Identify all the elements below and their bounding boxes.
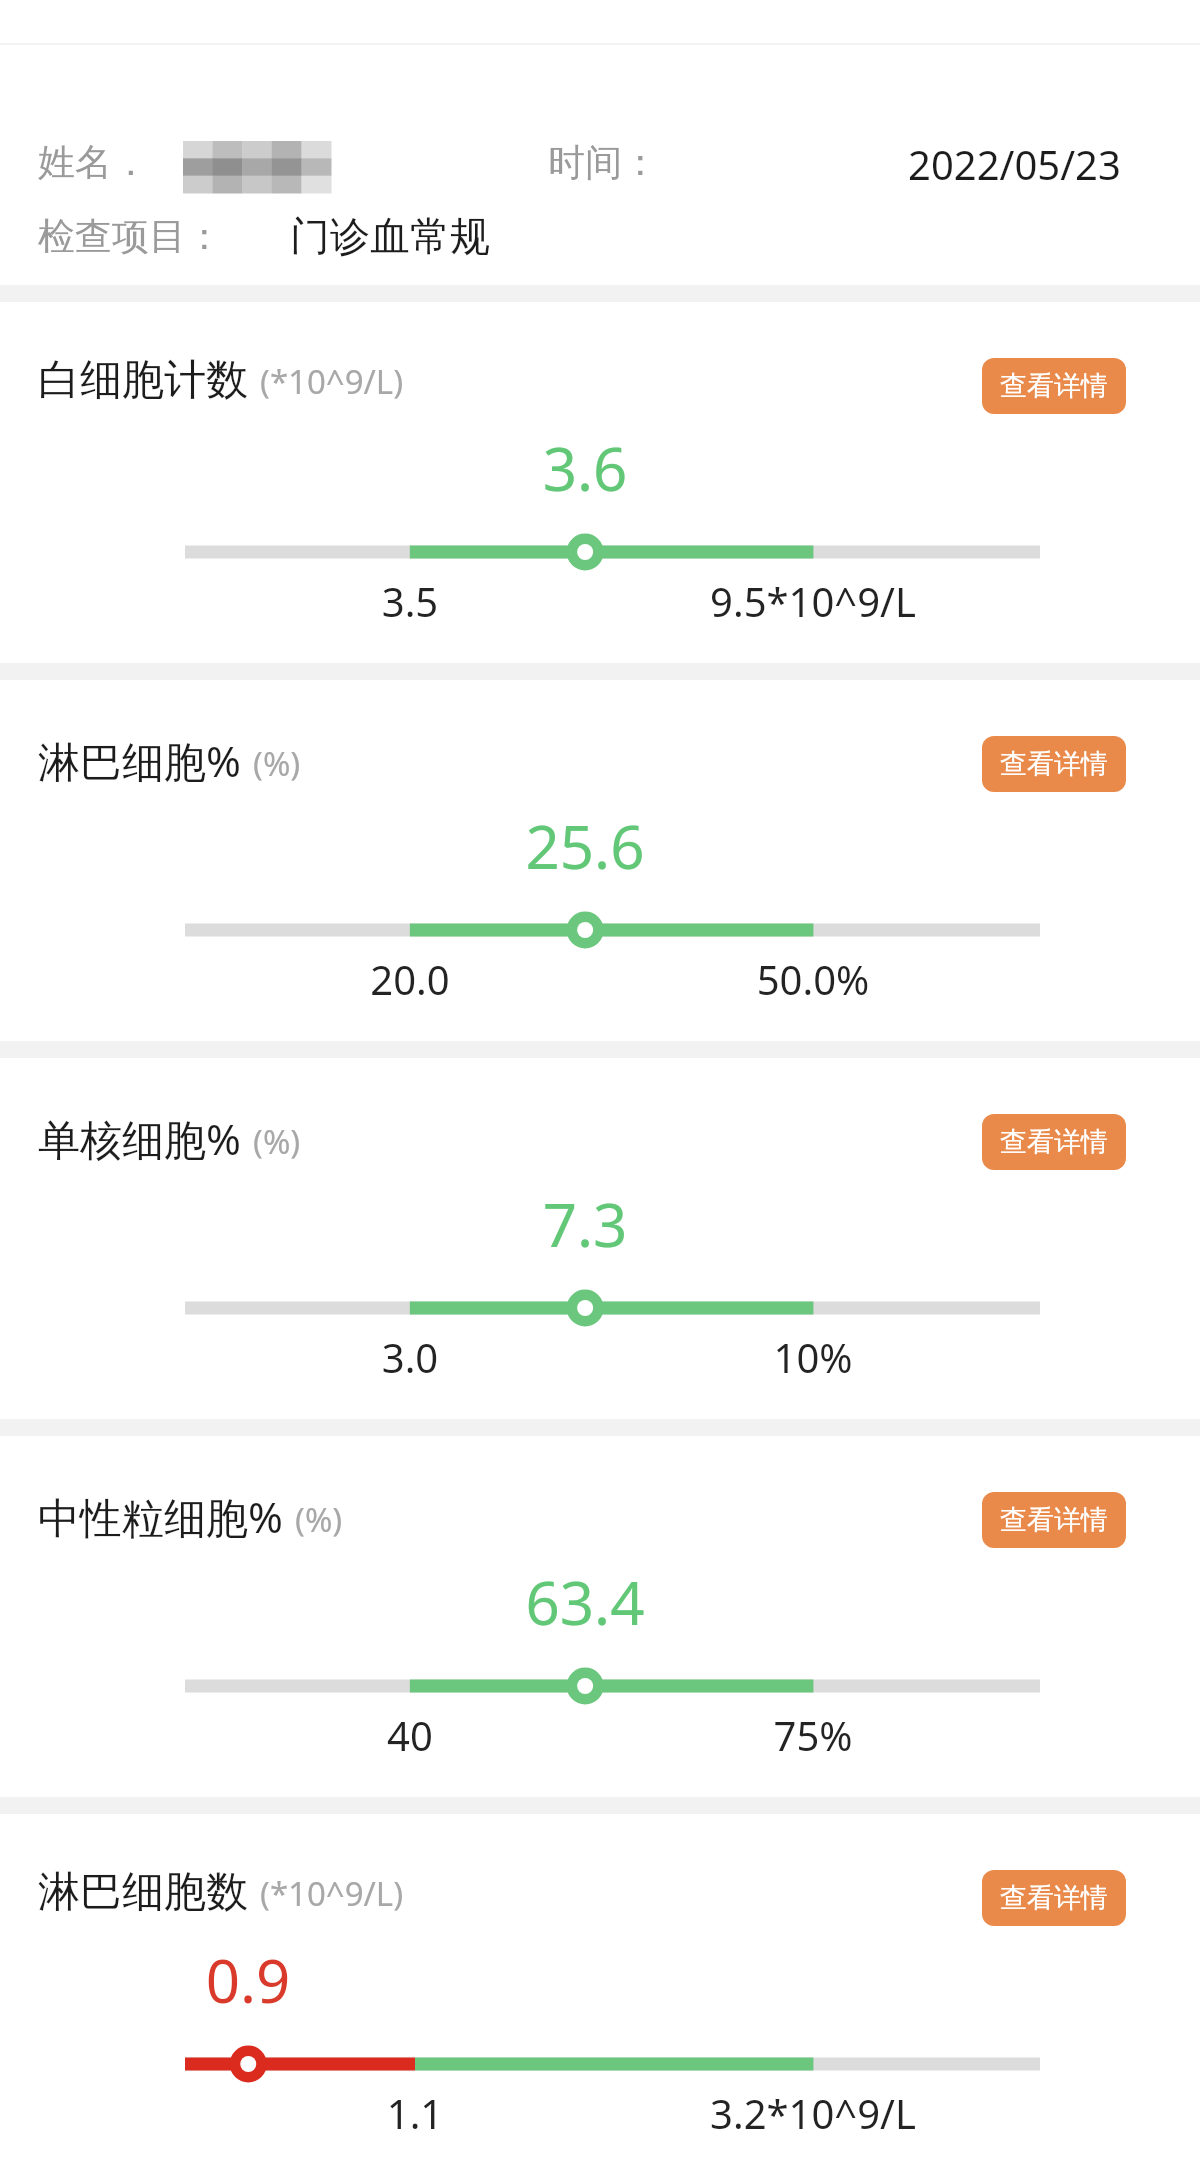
staticText: 40	[280, 1708, 540, 1762]
staticText: 3.6	[435, 427, 735, 509]
staticText: (%)	[253, 741, 301, 786]
staticText: 2022/05/23	[908, 137, 1121, 191]
staticText: 时间：	[548, 139, 659, 186]
staticText: 查看详情	[1000, 1503, 1108, 1537]
staticText: (*10^9/L)	[260, 1871, 404, 1916]
staticText: 姓名．	[38, 139, 149, 186]
staticText: (*10^9/L)	[260, 359, 404, 404]
staticText: 查看详情	[1000, 1881, 1108, 1915]
staticText: 25.6	[435, 805, 735, 887]
staticText: 10%	[643, 1330, 983, 1384]
button[interactable]: 查看详情	[982, 1114, 1126, 1170]
staticText: 75%	[643, 1708, 983, 1762]
staticText: 白细胞计数	[38, 354, 248, 407]
staticText: 淋巴细胞数	[38, 1866, 248, 1919]
staticText: 1.1	[285, 2086, 545, 2140]
button[interactable]: 查看详情	[982, 1492, 1126, 1548]
staticText: 63.4	[435, 1561, 735, 1643]
staticText: 淋巴细胞%	[38, 732, 241, 789]
staticText: 0.9	[98, 1939, 398, 2021]
staticText: 中性粒细胞%	[38, 1488, 283, 1545]
staticText: 7.3	[435, 1183, 735, 1265]
button[interactable]: 查看详情	[982, 736, 1126, 792]
staticText: 检查项目：	[38, 213, 223, 260]
staticText: (%)	[253, 1119, 301, 1164]
staticText: 3.2*10^9/L	[643, 2086, 983, 2140]
staticText: 3.5	[280, 574, 540, 628]
staticText: 9.5*10^9/L	[643, 574, 983, 628]
staticText: 单核细胞%	[38, 1110, 241, 1167]
staticText: 3.0	[280, 1330, 540, 1384]
staticText: 门诊血常规	[290, 211, 490, 261]
staticText: 查看详情	[1000, 369, 1108, 403]
staticText: (%)	[295, 1497, 343, 1542]
staticText: 50.0%	[643, 952, 983, 1006]
button[interactable]: 查看详情	[982, 358, 1126, 414]
staticText: 20.0	[280, 952, 540, 1006]
button[interactable]: 查看详情	[982, 1870, 1126, 1926]
staticText: 查看详情	[1000, 747, 1108, 781]
staticText: 查看详情	[1000, 1125, 1108, 1159]
